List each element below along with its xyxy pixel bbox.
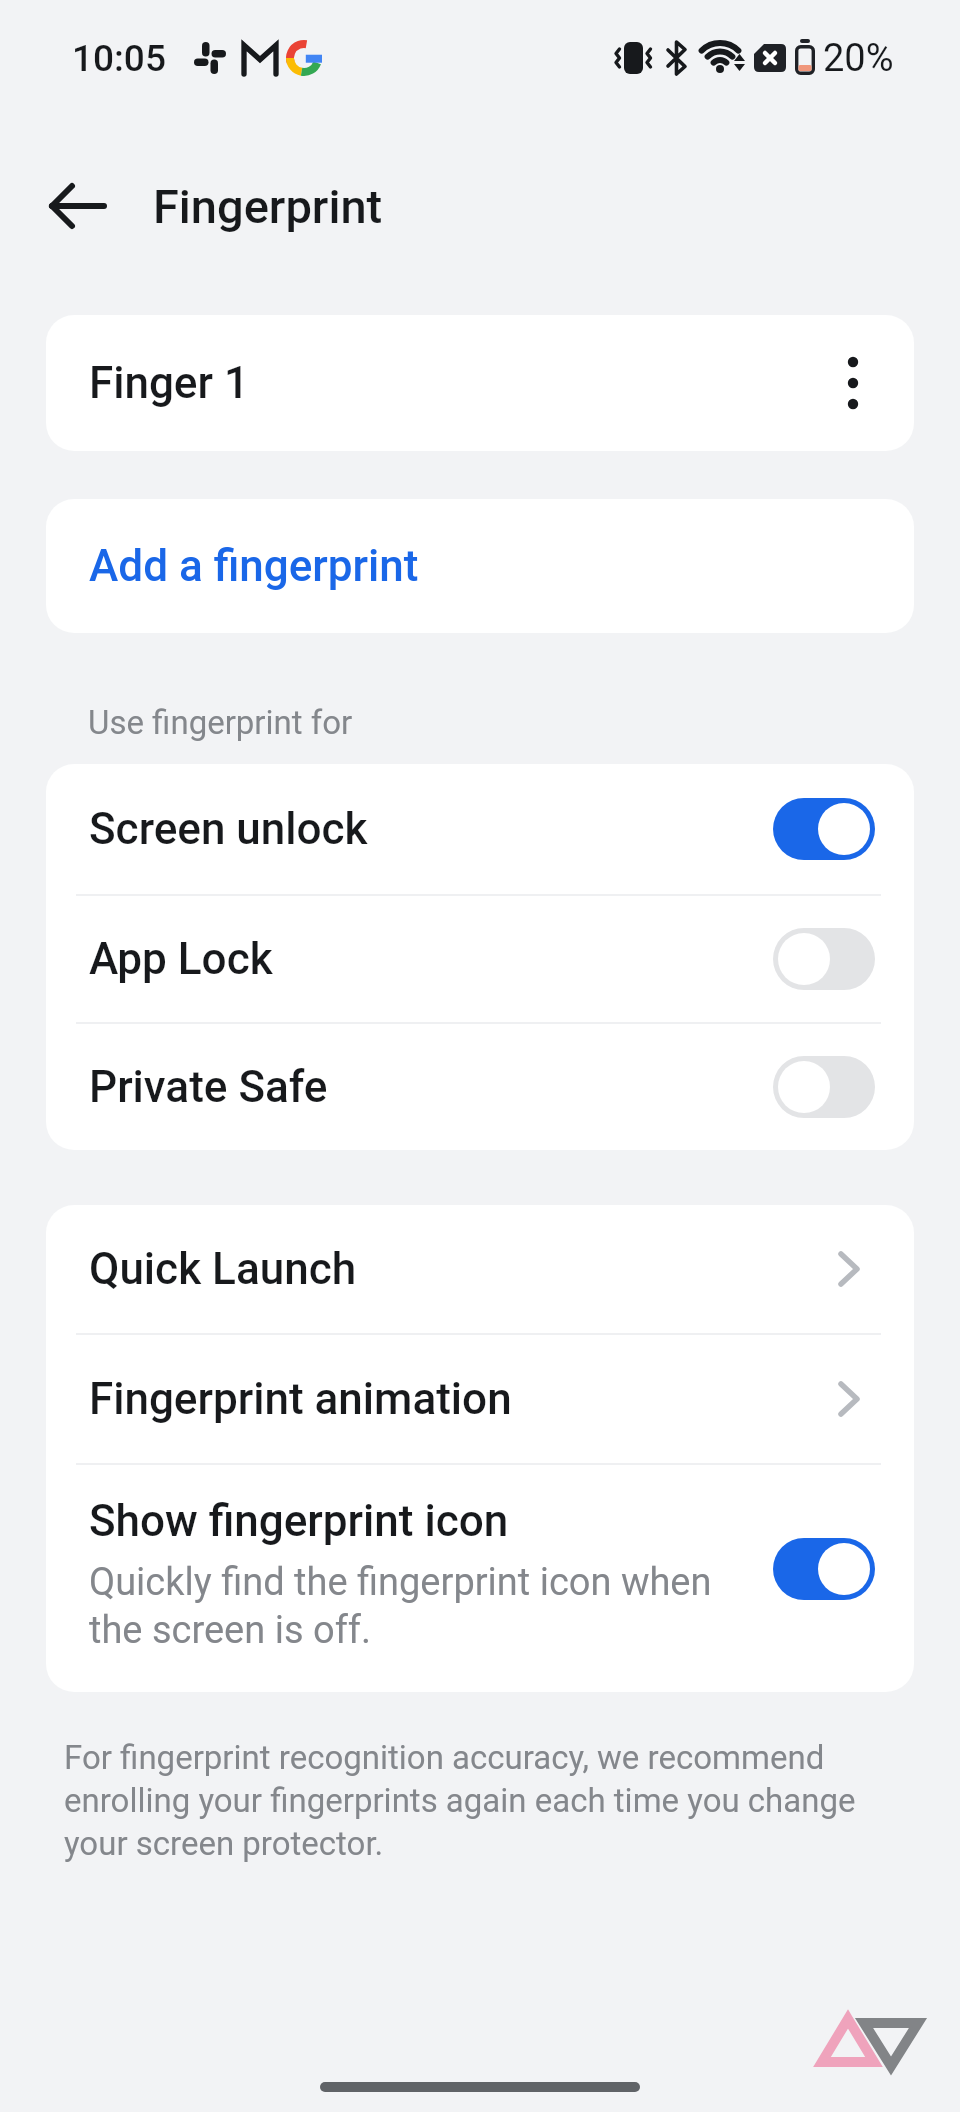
- staticText: 20%: [823, 36, 894, 81]
- staticText: Add a fingerprint: [89, 540, 419, 592]
- button[interactable]: Screen unlock: [46, 764, 914, 894]
- staticText: Fingerprint: [153, 179, 383, 234]
- button[interactable]: Fingerprint animation: [46, 1335, 914, 1463]
- button[interactable]: Add a fingerprint: [46, 499, 914, 633]
- staticText: Fingerprint animation: [89, 1373, 836, 1425]
- staticText: Private Safe: [89, 1061, 773, 1113]
- button[interactable]: Finger 1: [46, 315, 914, 451]
- staticText: Quickly find the fingerprint icon when t…: [89, 1560, 712, 1652]
- staticText: App Lock: [89, 933, 773, 985]
- staticText: 10:05: [72, 37, 166, 80]
- staticText: Screen unlock: [89, 803, 773, 855]
- button[interactable]: Show fingerprint icon: [46, 1465, 914, 1692]
- staticText: Use fingerprint for: [88, 703, 353, 742]
- staticText: Finger 1: [89, 357, 847, 409]
- button[interactable]: Quick Launch: [46, 1205, 914, 1333]
- staticText: Quick Launch: [89, 1243, 836, 1295]
- button[interactable]: Private Safe: [46, 1024, 914, 1150]
- button[interactable]: App Lock: [46, 896, 914, 1022]
- staticText: For fingerprint recognition accuracy, we…: [64, 1738, 856, 1863]
- staticText: Show fingerprint icon: [89, 1495, 509, 1547]
- button[interactable]: [50, 184, 106, 228]
